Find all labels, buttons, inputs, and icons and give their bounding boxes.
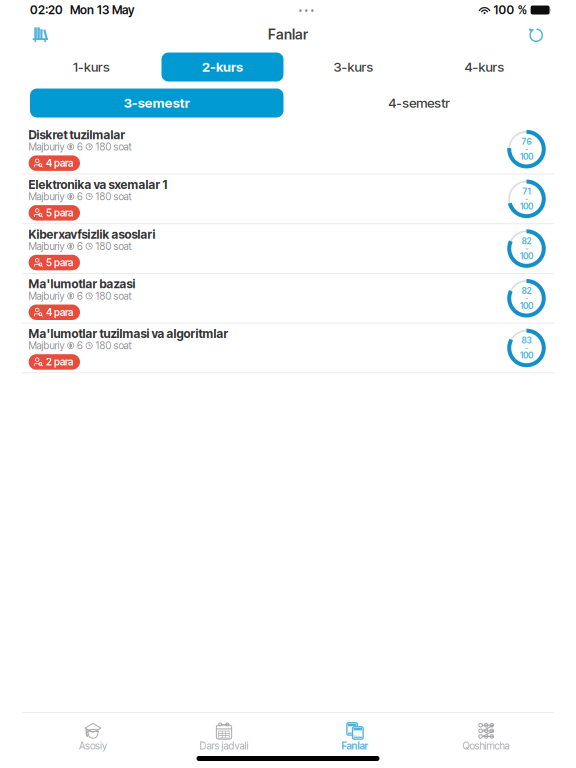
staticText: Majburiy: [29, 191, 65, 203]
button[interactable]: Ma'lumotlar tuzilmasi va algoritmlar: [0, 324, 576, 373]
button[interactable]: Asosiy: [27, 713, 158, 749]
staticText: 6: [77, 340, 83, 352]
staticText: -: [525, 144, 528, 154]
staticText: 4 para: [46, 157, 73, 169]
staticText: 180 soat: [95, 340, 131, 352]
staticText: 6: [77, 141, 83, 153]
staticText: -: [525, 194, 528, 204]
button[interactable]: 4-kurs: [419, 52, 550, 81]
button[interactable]: 3-kurs: [288, 52, 419, 81]
staticText: 100: [520, 251, 533, 261]
staticText: Elektronika va sxemalar 1: [29, 177, 168, 192]
staticText: Ma'lumotlar bazasi: [29, 277, 136, 291]
staticText: 82: [521, 285, 531, 296]
staticText: Dars jadvali: [199, 740, 248, 752]
button[interactable]: 2-kurs: [157, 52, 288, 81]
staticText: -: [525, 343, 528, 353]
staticText: 2 para: [46, 356, 73, 368]
staticText: Kiberxavfsizlik asoslari: [29, 227, 156, 241]
staticText: • • •: [298, 5, 314, 15]
staticText: 83: [521, 335, 531, 346]
staticText: 71: [522, 186, 530, 197]
staticText: 4-semestr: [388, 95, 450, 111]
staticText: 6: [77, 290, 83, 302]
staticText: 100: [520, 201, 533, 212]
staticText: Fanlar: [268, 26, 308, 43]
staticText: Asosiy: [79, 740, 107, 752]
staticText: 100: [520, 151, 533, 162]
staticText: Qoshimcha: [462, 740, 509, 752]
staticText: Mon 13 May: [70, 3, 134, 17]
staticText: Ma'lumotlar tuzilmasi va algoritmlar: [29, 326, 229, 341]
staticText: 180 soat: [95, 191, 131, 203]
staticText: 5 para: [46, 207, 73, 219]
staticText: Majburiy: [29, 290, 65, 302]
staticText: 4 para: [46, 306, 73, 318]
staticText: Fanlar: [341, 740, 368, 752]
button[interactable]: 3-semestr: [30, 88, 283, 117]
staticText: 3-kurs: [333, 59, 373, 75]
button[interactable]: Ma'lumotlar bazasi: [0, 274, 576, 324]
button[interactable]: Kiberxavfsizlik asoslari: [0, 224, 576, 274]
staticText: 3-semestr: [124, 95, 190, 111]
staticText: 02:20: [30, 3, 63, 17]
button[interactable]: Elektronika va sxemalar 1: [0, 174, 576, 224]
staticText: 100: [520, 300, 533, 311]
staticText: Majburiy: [29, 240, 65, 252]
button[interactable]: 1-kurs: [26, 52, 157, 81]
staticText: Majburiy: [29, 340, 65, 352]
button[interactable]: Diskret tuzilmalar: [0, 125, 576, 174]
staticText: 6: [77, 191, 83, 203]
staticText: 100: [520, 350, 533, 361]
staticText: 76: [521, 136, 531, 147]
staticText: 180 soat: [95, 290, 131, 302]
button[interactable]: Fanlar: [289, 713, 420, 749]
staticText: 180 soat: [95, 240, 131, 252]
staticText: 1-kurs: [73, 59, 110, 75]
staticText: -: [525, 244, 528, 253]
staticText: 5 para: [46, 256, 73, 269]
button[interactable]: Dars jadvali: [158, 713, 289, 749]
staticText: 180 soat: [95, 141, 131, 153]
staticText: 100 %: [494, 3, 528, 17]
staticText: Diskret tuzilmalar: [29, 128, 126, 142]
staticText: -: [525, 293, 528, 303]
button[interactable]: Refresh: [522, 23, 550, 46]
staticText: 82: [521, 236, 531, 246]
button[interactable]: Subjects: [27, 23, 54, 46]
staticText: 2-kurs: [202, 59, 243, 75]
staticText: Majburiy: [29, 141, 65, 153]
staticText: 4-kurs: [464, 59, 504, 75]
button[interactable]: Qoshimcha: [420, 713, 551, 749]
button[interactable]: 4-semestr: [292, 88, 546, 117]
staticText: 6: [77, 240, 83, 252]
